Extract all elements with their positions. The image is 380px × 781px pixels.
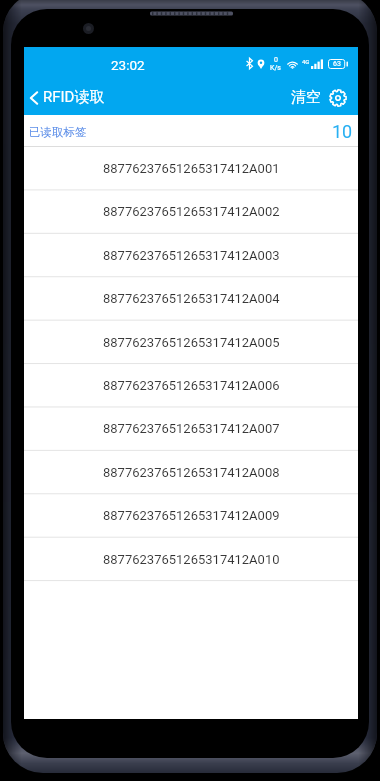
staticText: 0	[274, 56, 278, 64]
button[interactable]: RFID读取	[24, 82, 111, 113]
staticText: RFID读取	[43, 88, 105, 107]
staticText: 23:02	[111, 57, 145, 73]
button[interactable]: Settings	[325, 83, 351, 113]
button[interactable]: 88776237651265317412A005	[24, 321, 358, 364]
staticText: 88776237651265317412A010	[103, 552, 280, 567]
staticText: 88776237651265317412A004	[103, 291, 280, 306]
staticText: 88776237651265317412A009	[103, 508, 280, 523]
button[interactable]: 88776237651265317412A008	[24, 451, 358, 494]
staticText: 4G	[302, 58, 310, 65]
staticText: 88776237651265317412A008	[103, 465, 280, 480]
staticText: 63	[333, 60, 341, 68]
button[interactable]: 88776237651265317412A003	[24, 234, 358, 277]
staticText: 已读取标签	[29, 125, 87, 139]
staticText: 88776237651265317412A001	[103, 161, 280, 176]
button[interactable]: 88776237651265317412A009	[24, 494, 358, 537]
staticText: 88776237651265317412A007	[103, 421, 280, 436]
button[interactable]: 88776237651265317412A002	[24, 190, 358, 233]
button[interactable]: 88776237651265317412A010	[24, 538, 358, 581]
staticText: 88776237651265317412A002	[103, 204, 280, 219]
button[interactable]: 88776237651265317412A001	[24, 147, 358, 190]
staticText: 清空	[291, 88, 321, 107]
staticText: 88776237651265317412A006	[103, 378, 280, 393]
button[interactable]: 88776237651265317412A007	[24, 407, 358, 450]
staticText: 10	[332, 121, 353, 142]
staticText: 88776237651265317412A003	[103, 248, 280, 263]
button[interactable]: 88776237651265317412A004	[24, 277, 358, 320]
staticText: 88776237651265317412A005	[103, 335, 280, 350]
button[interactable]: 清空	[285, 82, 325, 113]
staticText: K/s	[270, 64, 281, 72]
button[interactable]: 88776237651265317412A006	[24, 364, 358, 407]
